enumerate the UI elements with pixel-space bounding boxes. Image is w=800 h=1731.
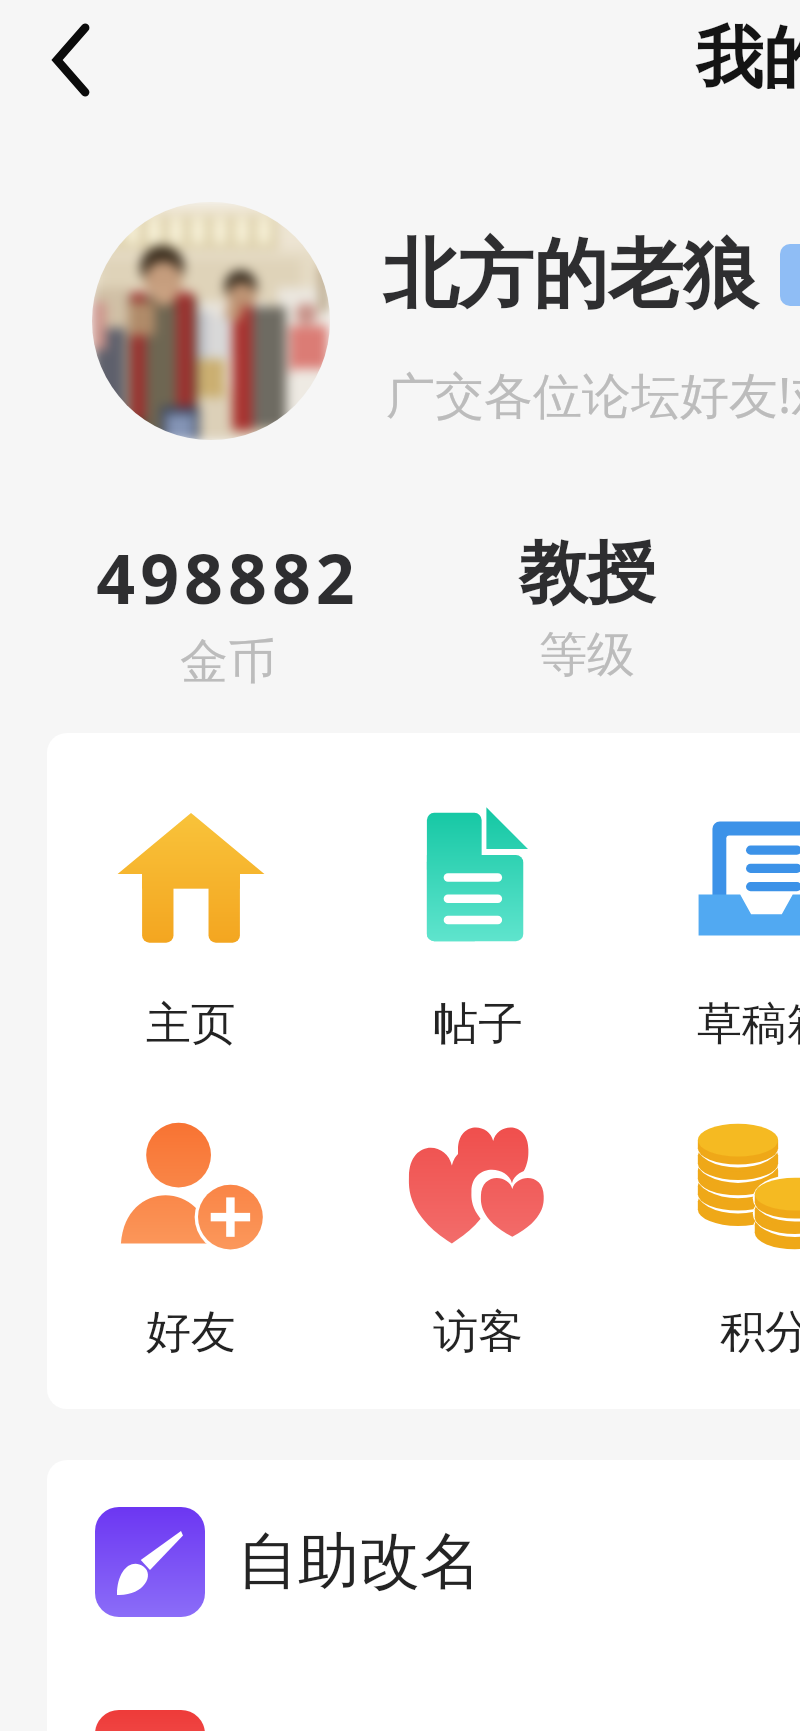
staticText: 我的主页 xyxy=(696,16,800,100)
staticText: 主页 xyxy=(146,996,236,1053)
button[interactable]: 498882 xyxy=(48,531,407,692)
staticText: 等级 xyxy=(539,625,635,685)
staticText: 498882 xyxy=(96,531,360,624)
staticText: 北方的老狼 xyxy=(383,228,758,322)
button[interactable]: 自助改名 xyxy=(47,1460,800,1663)
button[interactable]: 主页 xyxy=(47,799,334,1053)
staticText: 积分 xyxy=(720,1304,800,1361)
button[interactable]: 北方的老狼 xyxy=(383,228,800,322)
staticText: 广交各位论坛好友!欢迎交流 xyxy=(386,361,800,428)
button[interactable]: 好友 xyxy=(47,1107,334,1361)
button[interactable]: Profile photo xyxy=(92,202,330,440)
staticText: 自助改名 xyxy=(237,1523,481,1600)
staticText: 帖子 xyxy=(433,996,523,1053)
staticText: 草稿箱 xyxy=(697,996,800,1053)
button[interactable]: 举报中心 xyxy=(47,1663,800,1731)
staticText: 教授 xyxy=(519,531,655,617)
button[interactable]: 积分 xyxy=(621,1107,800,1361)
staticText: 访客 xyxy=(433,1304,523,1361)
button[interactable]: 草稿箱 xyxy=(621,799,800,1053)
button[interactable]: Back xyxy=(10,0,130,120)
button[interactable]: 教授 xyxy=(407,531,766,685)
button[interactable]: 帖子 xyxy=(334,799,621,1053)
button[interactable]: 访客 xyxy=(334,1107,621,1361)
staticText: 金币 xyxy=(180,632,276,692)
staticText: 好友 xyxy=(146,1304,236,1361)
other: Verified badge xyxy=(780,244,800,306)
